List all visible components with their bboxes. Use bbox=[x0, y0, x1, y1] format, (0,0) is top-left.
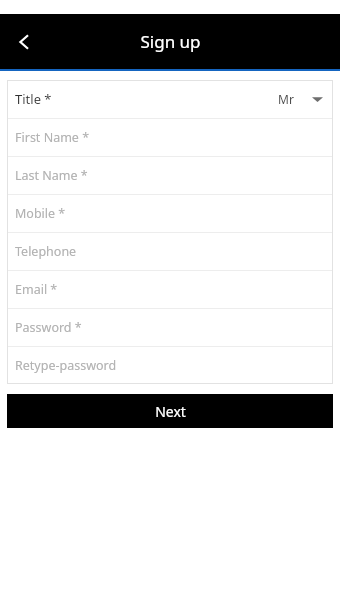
button[interactable]: Retype-password bbox=[7, 347, 333, 384]
staticText: Mr bbox=[278, 91, 294, 107]
button[interactable]: Back bbox=[4, 22, 44, 62]
button[interactable]: First Name * bbox=[7, 119, 333, 156]
staticText: Sign up bbox=[140, 30, 201, 53]
button[interactable]: Last Name * bbox=[7, 157, 333, 194]
staticText: Telephone bbox=[15, 243, 77, 260]
staticText: Title * bbox=[15, 90, 52, 108]
button[interactable]: Next bbox=[7, 394, 333, 428]
button[interactable]: Email * bbox=[7, 271, 333, 308]
staticText: Password * bbox=[15, 319, 82, 336]
staticText: Next bbox=[155, 402, 186, 421]
button[interactable]: Mobile * bbox=[7, 195, 333, 232]
staticText: Email * bbox=[15, 281, 58, 298]
staticText: Mobile * bbox=[15, 205, 66, 222]
button[interactable]: Telephone bbox=[7, 233, 333, 270]
staticText: Retype-password bbox=[15, 357, 117, 374]
staticText: First Name * bbox=[15, 129, 90, 146]
staticText: Last Name * bbox=[15, 167, 88, 184]
button[interactable]: Password * bbox=[7, 309, 333, 346]
button[interactable]: Title * bbox=[7, 80, 333, 118]
